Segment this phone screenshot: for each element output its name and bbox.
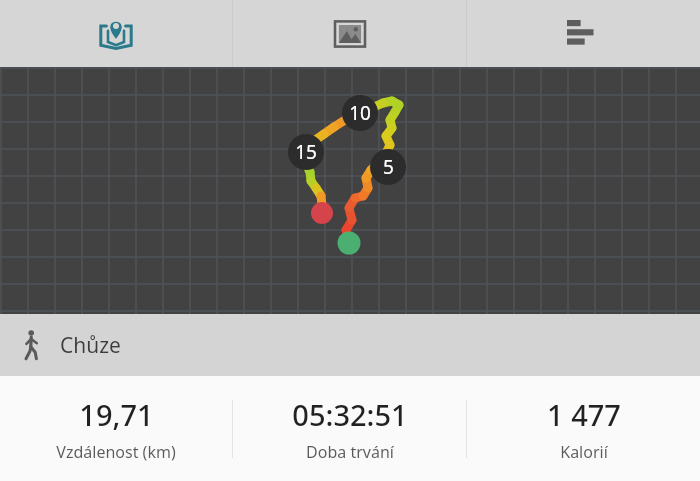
button[interactable]: Map (0, 0, 232, 67)
button[interactable]: Statistics (467, 0, 700, 67)
staticText: Chůze (60, 331, 121, 360)
staticText: 15 (295, 139, 317, 165)
staticText: Kalorií (560, 441, 608, 463)
staticText: 1 477 (547, 395, 621, 434)
button[interactable]: Chůze (0, 314, 700, 376)
button[interactable]: Photos (233, 0, 466, 67)
staticText: 19,71 (79, 395, 154, 434)
button[interactable]: 19,71 (0, 376, 232, 481)
staticText: 5 (383, 154, 394, 180)
button[interactable]: 1 477 (467, 376, 700, 481)
staticText: Vzdálenost (km) (56, 441, 176, 463)
staticText: 05:32:51 (292, 395, 408, 434)
staticText: Doba trvání (306, 441, 394, 463)
staticText: 10 (349, 100, 371, 126)
button[interactable]: 05:32:51 (233, 376, 466, 481)
